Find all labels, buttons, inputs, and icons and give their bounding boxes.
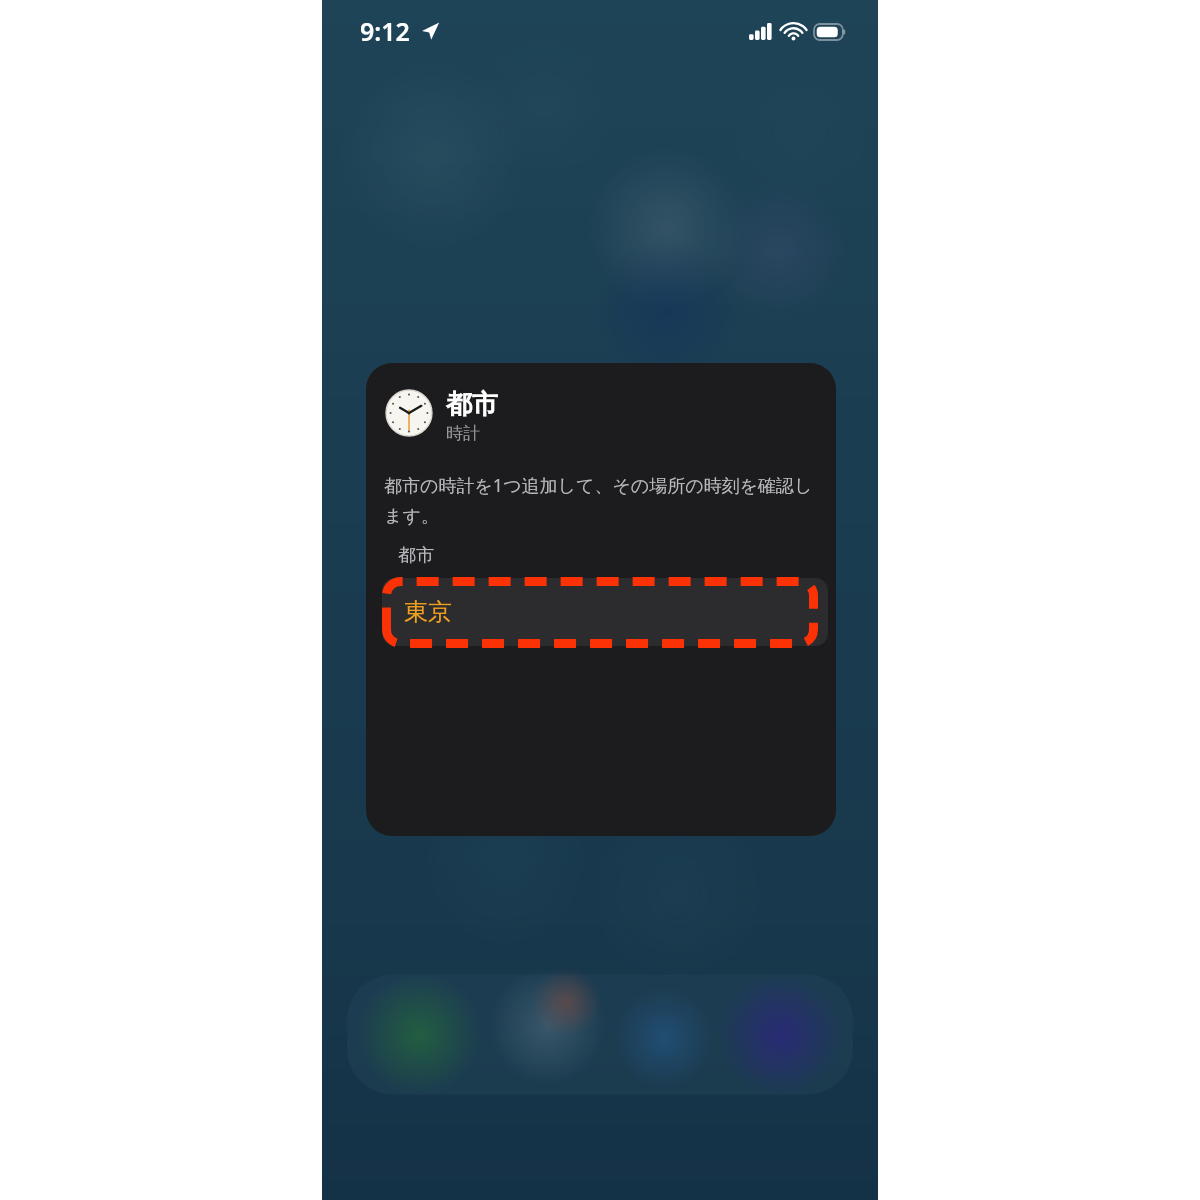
staticText: 都市の時計を1つ追加して、その場所の時刻を確認します。: [384, 473, 814, 528]
staticText: 9:12: [360, 14, 410, 48]
staticText: 都市: [398, 544, 434, 567]
button[interactable]: 東京: [382, 578, 828, 646]
staticText: 都市: [446, 388, 498, 421]
staticText: 時計: [446, 423, 480, 444]
staticText: 東京: [404, 597, 452, 627]
